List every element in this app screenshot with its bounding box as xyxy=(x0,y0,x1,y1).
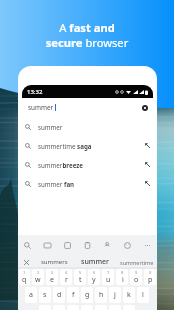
staticText: 6 xyxy=(93,270,96,275)
staticText: 2 xyxy=(37,270,40,275)
staticText: y xyxy=(92,275,96,285)
button[interactable]: g xyxy=(81,287,93,303)
staticText: 0 xyxy=(149,270,152,275)
staticText: 1 xyxy=(23,270,26,275)
staticText: 9 xyxy=(135,270,138,275)
staticText: 5 xyxy=(79,270,82,275)
button[interactable]: j xyxy=(109,287,121,303)
staticText: g xyxy=(85,290,90,300)
button[interactable]: 6 xyxy=(88,269,100,285)
staticText: u xyxy=(106,275,111,285)
button[interactable]: Keyboard tool 4 xyxy=(103,241,112,250)
staticText: j xyxy=(114,290,116,300)
staticText: o xyxy=(134,275,139,285)
button[interactable]: 1 xyxy=(19,269,30,285)
staticText: summer fan xyxy=(38,180,75,188)
button[interactable]: Keyboard tool 2 xyxy=(63,241,72,250)
staticText: s xyxy=(43,290,47,300)
button[interactable]: Clear search xyxy=(142,105,148,111)
staticText: a xyxy=(29,290,33,300)
staticText: w xyxy=(35,275,41,285)
button[interactable]: f xyxy=(67,287,79,303)
button[interactable]: s xyxy=(39,287,51,303)
staticText: 13:32 xyxy=(27,88,43,96)
button[interactable]: 3 xyxy=(46,269,58,285)
staticText: l xyxy=(142,290,144,300)
staticText: summer xyxy=(38,123,63,131)
staticText: A fast and secure browser xyxy=(0,20,174,50)
staticText: 3 xyxy=(51,270,54,275)
button[interactable]: h xyxy=(95,287,107,303)
staticText: i xyxy=(122,275,124,285)
staticText: t xyxy=(79,275,82,285)
button[interactable]: summertime saga xyxy=(18,136,157,155)
button[interactable]: Keyboard tool 3 xyxy=(83,241,92,250)
button[interactable]: 2 xyxy=(32,269,44,285)
staticText: 7 xyxy=(107,270,110,275)
staticText: q xyxy=(22,275,27,285)
button[interactable]: 7 xyxy=(102,269,114,285)
button[interactable]: l xyxy=(137,287,149,303)
staticText: f xyxy=(72,290,75,300)
button[interactable]: summer xyxy=(75,256,116,268)
staticText: 4 xyxy=(65,270,68,275)
button[interactable]: Keyboard tool 6 xyxy=(143,241,152,250)
staticText: h xyxy=(99,290,104,300)
staticText: summer xyxy=(28,103,54,112)
staticText: summertime xyxy=(120,259,154,266)
button[interactable]: 8 xyxy=(116,269,128,285)
button[interactable]: a xyxy=(25,287,37,303)
button[interactable]: 0 xyxy=(144,269,156,285)
button[interactable]: Keyboard tool 5 xyxy=(123,241,132,250)
button[interactable]: summerbreeze xyxy=(18,155,157,174)
staticText: summer xyxy=(81,257,110,267)
button[interactable]: Keyboard tool 1 xyxy=(43,241,52,250)
staticText: p xyxy=(148,275,153,285)
button[interactable]: 4 xyxy=(60,269,72,285)
staticText: summertime saga xyxy=(38,142,92,150)
button[interactable]: 9 xyxy=(130,269,142,285)
staticText: d xyxy=(57,290,62,300)
staticText: summerbreeze xyxy=(38,161,84,169)
button[interactable]: 5 xyxy=(74,269,86,285)
staticText: e xyxy=(50,275,54,285)
button[interactable]: d xyxy=(53,287,65,303)
staticText: k xyxy=(127,290,131,300)
staticText: r xyxy=(65,275,68,285)
button[interactable]: summer xyxy=(18,117,157,136)
button[interactable]: summer fan xyxy=(18,174,157,193)
button[interactable]: summers xyxy=(34,256,75,268)
button[interactable]: summertime xyxy=(116,256,157,268)
staticText: 8 xyxy=(121,270,124,275)
button[interactable]: k xyxy=(123,287,135,303)
staticText: summers xyxy=(41,258,68,266)
button[interactable]: Keyboard tool 0 xyxy=(23,241,32,250)
